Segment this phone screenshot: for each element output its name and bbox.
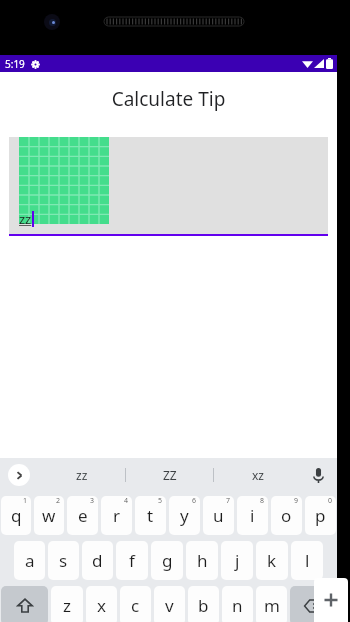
button[interactable]: k	[256, 541, 288, 580]
staticText: ZZ	[163, 467, 177, 483]
staticText: r	[113, 504, 121, 527]
button[interactable]: d	[82, 541, 113, 580]
staticText: g	[162, 549, 173, 572]
button[interactable]: o	[271, 496, 302, 535]
button[interactable]: g	[151, 541, 183, 580]
staticText: 7	[226, 496, 231, 506]
button[interactable]: Backspace	[290, 586, 336, 622]
staticText: 0	[328, 496, 333, 506]
staticText: 6	[192, 496, 197, 506]
button[interactable]: zz	[38, 458, 125, 491]
button[interactable]: xz	[214, 458, 301, 491]
button[interactable]: p	[305, 496, 336, 535]
button[interactable]: ZZ	[126, 458, 213, 491]
staticText: e	[78, 504, 88, 527]
button[interactable]: b	[188, 586, 219, 622]
staticText: c	[131, 594, 140, 617]
button[interactable]: i	[237, 496, 268, 535]
staticText: v	[165, 594, 174, 617]
staticText: 3	[90, 496, 95, 506]
staticText: x	[97, 594, 106, 617]
button[interactable]: j	[221, 541, 253, 580]
staticText: Calculate Tip	[0, 86, 337, 112]
button[interactable]: t	[135, 496, 166, 535]
button[interactable]: y	[169, 496, 200, 535]
button[interactable]: z	[51, 586, 83, 622]
button[interactable]: u	[203, 496, 234, 535]
staticText: y	[180, 504, 189, 527]
staticText: o	[281, 504, 292, 527]
staticText: n	[232, 594, 243, 617]
staticText: t	[147, 504, 154, 527]
staticText: u	[213, 504, 224, 527]
button[interactable]: l	[291, 541, 323, 580]
staticText: 2	[56, 496, 61, 506]
staticText: p	[315, 504, 326, 527]
staticText: j	[235, 549, 240, 572]
staticText: w	[42, 504, 56, 527]
button[interactable]: e	[67, 496, 98, 535]
button[interactable]: Voice input	[307, 464, 329, 486]
button[interactable]: s	[48, 541, 79, 580]
button[interactable]: v	[154, 586, 185, 622]
staticText: l	[305, 549, 310, 572]
button[interactable]: n	[222, 586, 253, 622]
button[interactable]: m	[256, 586, 287, 622]
staticText: a	[25, 549, 35, 572]
staticText: m	[264, 594, 280, 617]
button[interactable]: Shift	[1, 586, 48, 622]
staticText: s	[59, 549, 68, 572]
staticText: 1	[23, 496, 28, 506]
staticText: h	[197, 549, 208, 572]
button[interactable]: w	[34, 496, 64, 535]
staticText: zz	[19, 210, 32, 228]
staticText: k	[267, 549, 277, 572]
staticText: xz	[252, 467, 264, 483]
button[interactable]: f	[116, 541, 148, 580]
button[interactable]: Add	[314, 578, 348, 622]
button[interactable]: c	[120, 586, 151, 622]
staticText: 8	[260, 496, 265, 506]
button[interactable]: More suggestions	[8, 464, 30, 486]
button[interactable]: a	[14, 541, 45, 580]
staticText: 4	[124, 496, 129, 506]
button[interactable]: x	[86, 586, 117, 622]
button[interactable]: r	[101, 496, 132, 535]
staticText: 5	[158, 496, 163, 506]
staticText: 5:19	[5, 57, 25, 71]
staticText: zz	[76, 467, 88, 483]
staticText: d	[92, 549, 103, 572]
button[interactable]: zz	[9, 137, 328, 234]
staticText: i	[250, 504, 255, 527]
button[interactable]: q	[1, 496, 31, 535]
staticText: q	[11, 504, 22, 527]
staticText: f	[129, 549, 135, 572]
staticText: b	[198, 594, 209, 617]
staticText: 9	[294, 496, 299, 506]
staticText: z	[63, 594, 71, 617]
button[interactable]: h	[186, 541, 218, 580]
